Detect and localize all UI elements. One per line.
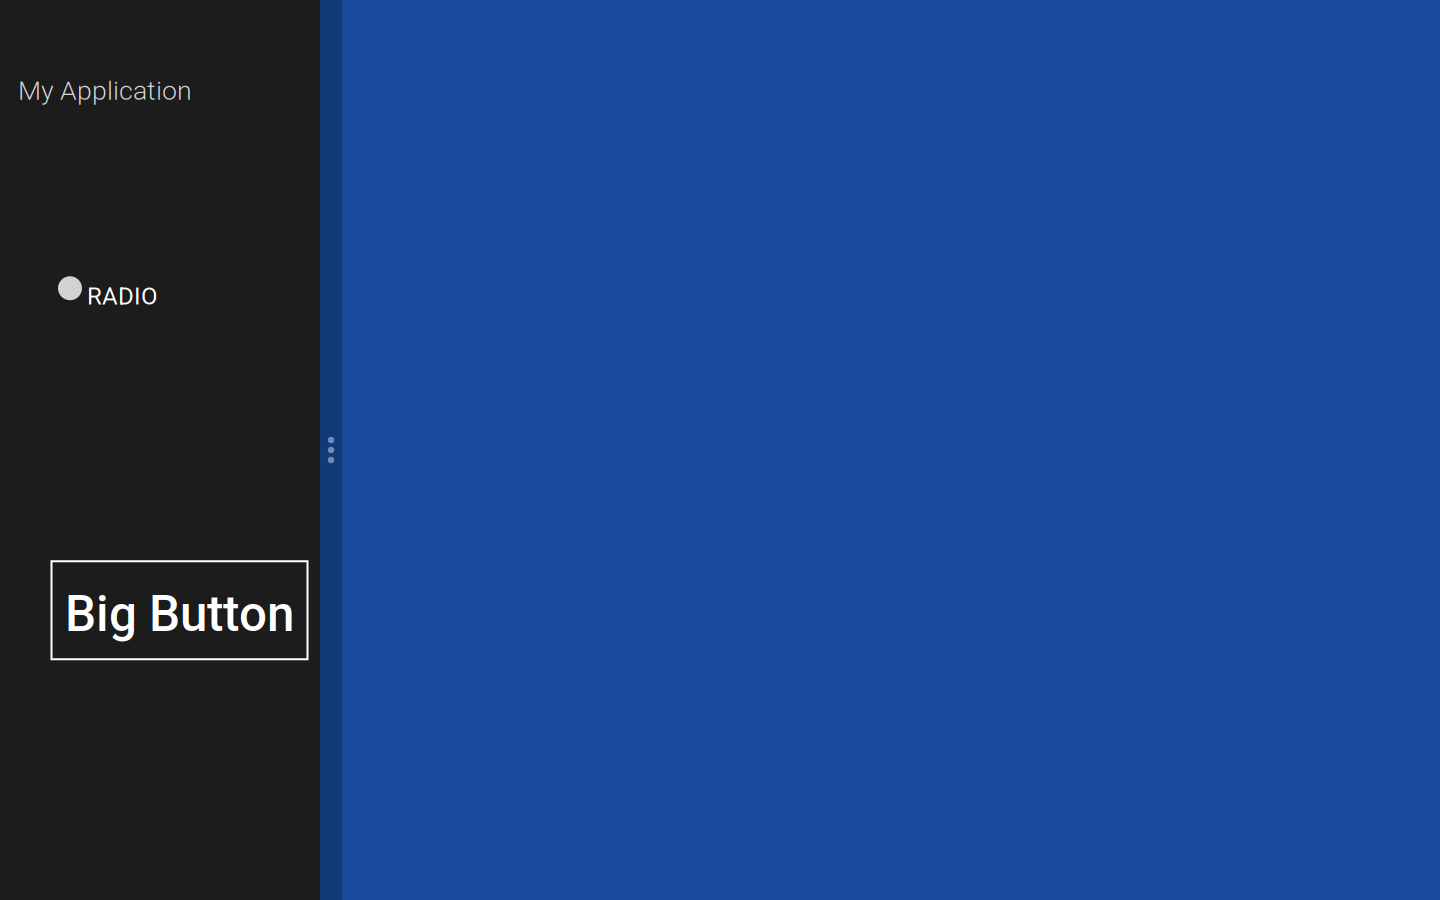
staticText: RADIO: [87, 282, 158, 310]
button[interactable]: RADIO: [58, 275, 162, 307]
staticText: My Application: [18, 75, 192, 106]
button[interactable]: Big Button: [51, 561, 307, 659]
button[interactable]: Resize sidebar: [320, 0, 342, 900]
staticText: Big Button: [65, 585, 294, 643]
